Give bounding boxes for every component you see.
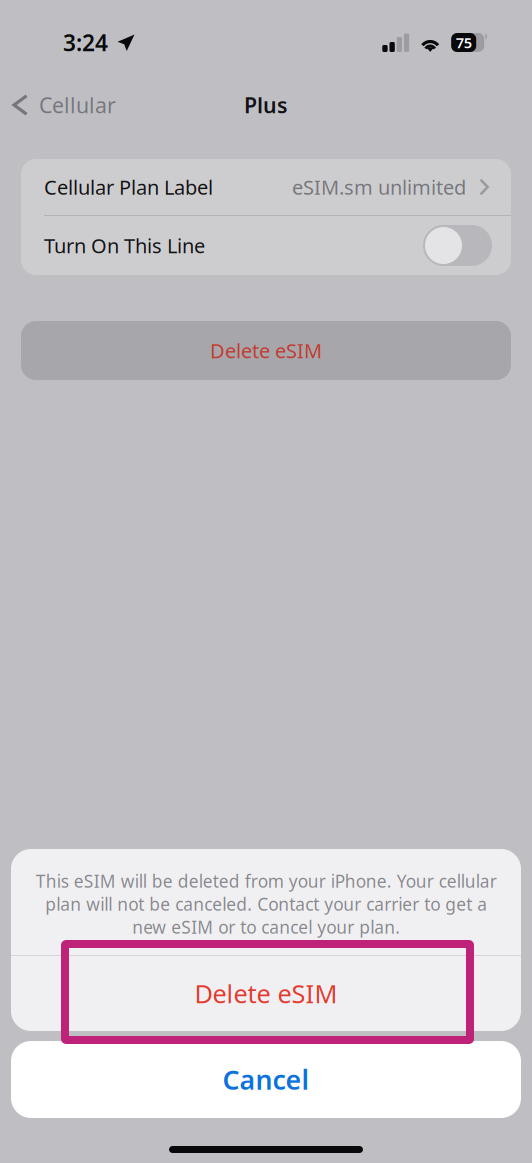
staticText: 75: [456, 33, 472, 52]
button[interactable]: Cellular Plan Label: [21, 159, 511, 215]
staticText: Cellular Plan Label: [44, 174, 213, 200]
staticText: Plus: [244, 91, 288, 119]
button[interactable]: Delete eSIM: [21, 321, 511, 380]
staticText: Turn On This Line: [44, 232, 205, 259]
button[interactable]: Cancel: [11, 1041, 521, 1118]
staticText: Cellular: [39, 91, 116, 119]
staticText: Cancel: [222, 1062, 309, 1097]
button[interactable]: Cellular: [0, 83, 128, 127]
staticText: 3:24: [63, 27, 108, 57]
button[interactable]: Delete eSIM: [11, 956, 521, 1031]
staticText: This eSIM will be deleted from your iPho…: [35, 869, 496, 939]
staticText: Delete eSIM: [194, 977, 337, 1010]
button[interactable]: Turn On This Line: [21, 216, 511, 275]
staticText: Delete eSIM: [210, 337, 322, 364]
staticText: eSIM.sm unlimited: [292, 174, 466, 200]
